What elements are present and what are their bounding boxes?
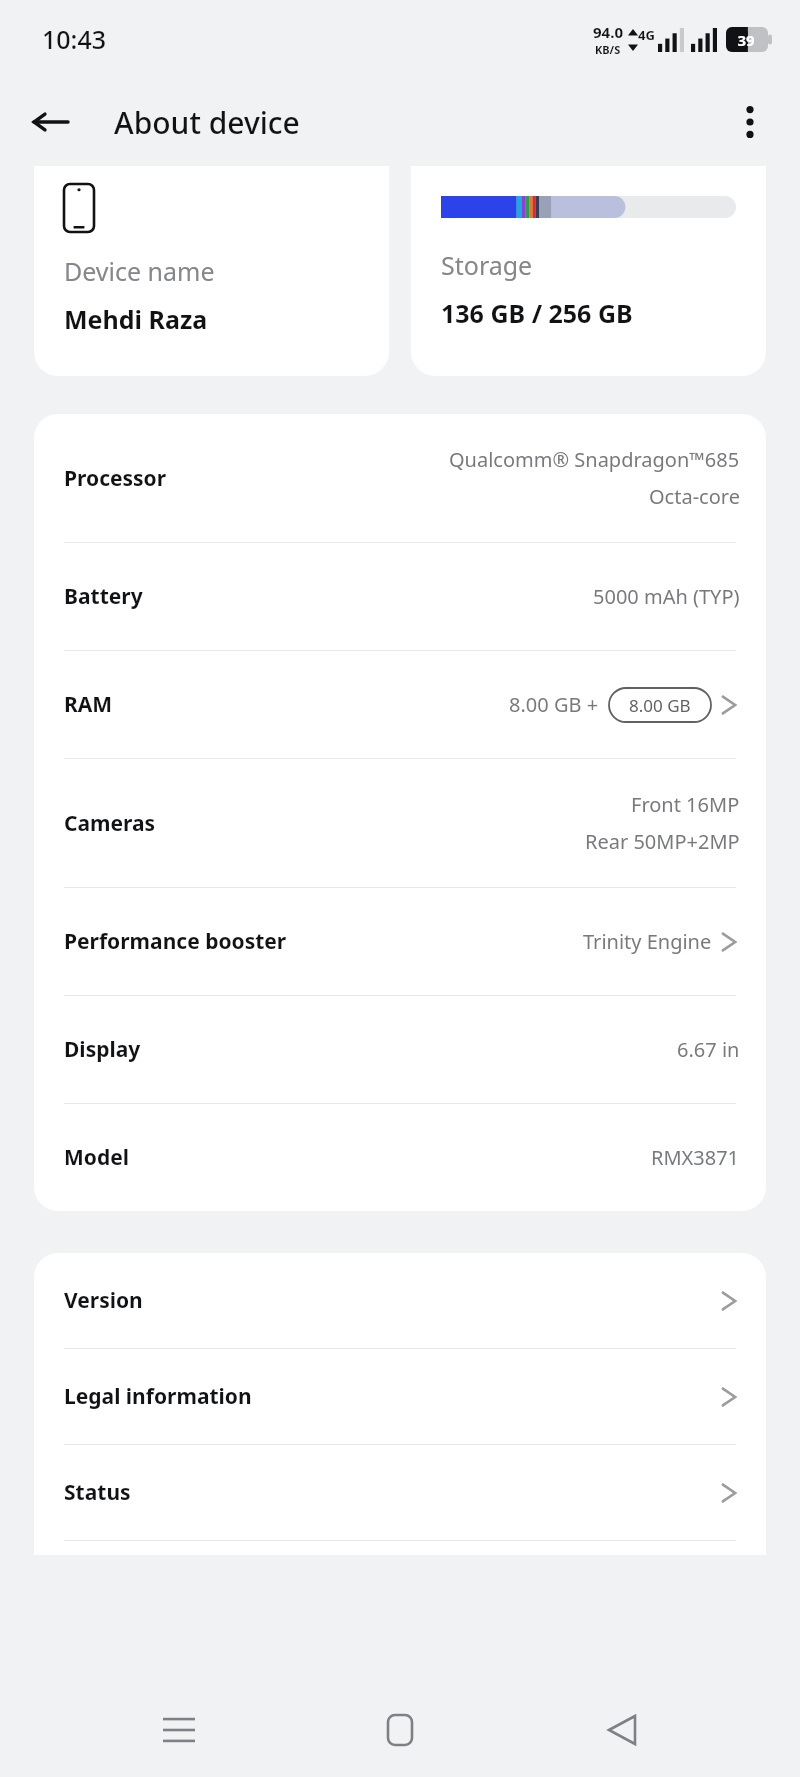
staticText: 4G bbox=[638, 26, 655, 44]
button[interactable]: Back bbox=[579, 1687, 665, 1773]
staticText: Mehdi Raza bbox=[64, 302, 208, 336]
staticText: Qualcomm® Snapdragon™685 bbox=[449, 446, 740, 473]
staticText: 8.00 GB + bbox=[509, 691, 599, 718]
staticText: About device bbox=[114, 102, 300, 143]
staticText: Device name bbox=[64, 254, 215, 288]
staticText: Display bbox=[64, 1035, 141, 1064]
button[interactable]: Battery bbox=[34, 543, 766, 650]
staticText: 136 GB / 256 GB bbox=[441, 296, 633, 330]
button[interactable]: Version bbox=[34, 1253, 766, 1348]
staticText: 94.0 bbox=[593, 22, 623, 42]
staticText: Status bbox=[64, 1478, 131, 1507]
button[interactable]: Legal information bbox=[34, 1349, 766, 1444]
button[interactable]: Back bbox=[22, 94, 78, 150]
staticText: Front 16MP bbox=[631, 791, 740, 818]
button[interactable]: More options bbox=[722, 94, 778, 150]
staticText: RAM bbox=[64, 690, 113, 719]
button[interactable]: Storage bbox=[411, 166, 766, 376]
staticText: Performance booster bbox=[64, 927, 287, 956]
staticText: Model bbox=[64, 1143, 129, 1172]
staticText: Octa-core bbox=[649, 483, 740, 510]
staticText: Rear 50MP+2MP bbox=[585, 828, 740, 855]
button[interactable]: Cameras bbox=[34, 759, 766, 887]
button[interactable]: Device name bbox=[34, 166, 389, 376]
button[interactable]: Performance booster bbox=[34, 888, 766, 995]
staticText: Trinity Engine bbox=[583, 928, 712, 955]
staticText: Cameras bbox=[64, 809, 156, 838]
staticText: 39 bbox=[737, 30, 755, 50]
staticText: Legal information bbox=[64, 1382, 252, 1411]
button[interactable]: Model bbox=[34, 1104, 766, 1211]
staticText: 6.67 in bbox=[677, 1036, 740, 1063]
staticText: KB/S bbox=[595, 42, 621, 57]
staticText: RMX3871 bbox=[651, 1144, 740, 1171]
button[interactable]: RAM bbox=[34, 651, 766, 758]
staticText: Version bbox=[64, 1286, 143, 1315]
staticText: Battery bbox=[64, 582, 143, 611]
staticText: Storage bbox=[441, 248, 533, 282]
staticText: 5000 mAh (TYP) bbox=[593, 583, 740, 610]
button[interactable]: Status bbox=[34, 1445, 766, 1540]
staticText: 10:43 bbox=[42, 22, 107, 56]
staticText: 8.00 GB bbox=[629, 694, 691, 717]
button[interactable]: Display bbox=[34, 996, 766, 1103]
button[interactable]: Recents bbox=[136, 1687, 222, 1773]
button[interactable]: Processor bbox=[34, 414, 766, 542]
button[interactable]: Home bbox=[357, 1687, 443, 1773]
staticText: Processor bbox=[64, 464, 167, 493]
